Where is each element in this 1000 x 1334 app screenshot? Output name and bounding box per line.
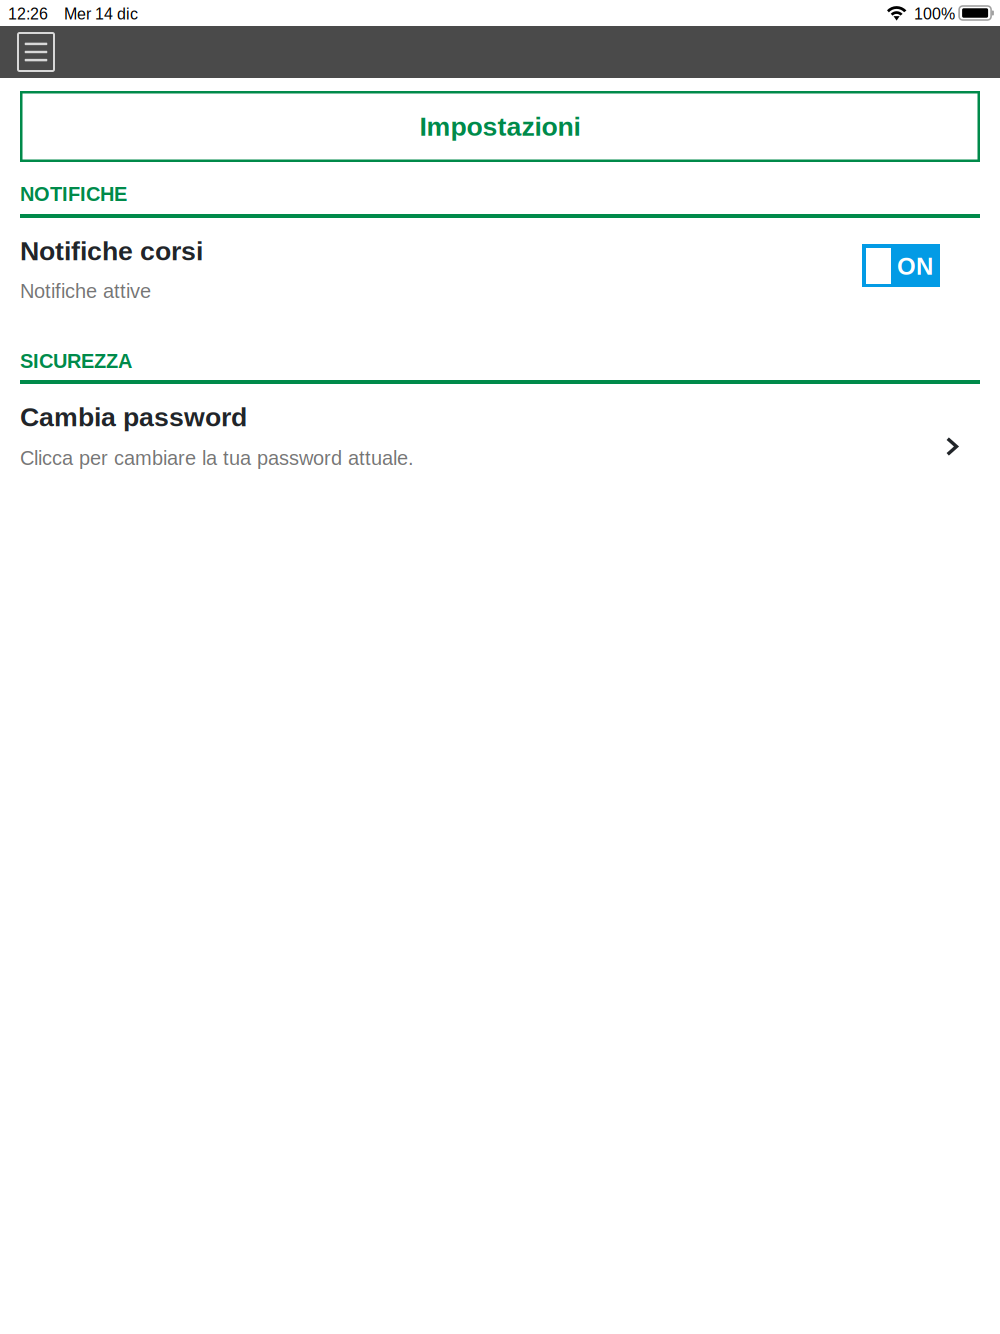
staticText: NOTIFICHE bbox=[20, 183, 127, 205]
button[interactable]: Impostazioni bbox=[20, 91, 980, 162]
button[interactable]: Notifiche corsi bbox=[20, 236, 980, 300]
button[interactable]: Menu bbox=[0, 26, 64, 78]
staticText: Notifiche attive bbox=[20, 280, 151, 302]
button[interactable]: Notifiche corsi, attivo bbox=[862, 244, 940, 287]
button[interactable]: Cambia password bbox=[20, 402, 980, 466]
staticText: SICUREZZA bbox=[20, 350, 132, 372]
staticText: Mer 14 dic bbox=[64, 5, 138, 23]
staticText: Clicca per cambiare la tua password attu… bbox=[20, 447, 414, 469]
staticText: Cambia password bbox=[20, 402, 247, 432]
staticText: ON bbox=[897, 253, 933, 280]
staticText: 12:26 bbox=[8, 5, 48, 23]
staticText: 100% bbox=[914, 5, 955, 23]
staticText: Notifiche corsi bbox=[20, 236, 203, 266]
staticText: Impostazioni bbox=[419, 112, 580, 141]
